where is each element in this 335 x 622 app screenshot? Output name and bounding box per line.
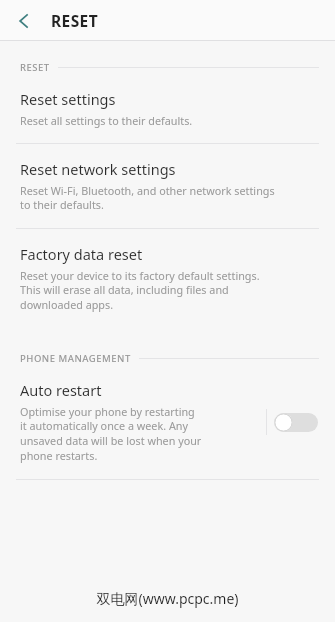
staticText: Reset settings (20, 89, 116, 109)
staticText: RESET (20, 61, 50, 74)
staticText: Reset network settings (20, 159, 176, 179)
staticText: PHONE MANAGEMENT (20, 352, 131, 365)
staticText: Reset all settings to their defaults. (20, 113, 193, 128)
button[interactable]: Reset network settings (0, 144, 335, 228)
button[interactable]: Reset settings (0, 74, 335, 143)
staticText: Optimise your phone by restarting it aut… (20, 404, 202, 464)
staticText: Auto restart (20, 380, 102, 400)
staticText: Reset Wi-Fi, Bluetooth, and other networ… (20, 183, 275, 213)
staticText: Factory data reset (20, 244, 143, 264)
staticText: 双电网(www.pcpc.me) (96, 589, 239, 608)
staticText: Reset your device to its factory default… (20, 268, 260, 313)
button[interactable]: Auto restart toggle (274, 412, 318, 432)
button[interactable]: Factory data reset (0, 229, 335, 328)
button[interactable]: Auto restart (0, 365, 335, 479)
button[interactable]: Back (8, 5, 40, 37)
staticText: RESET (51, 10, 99, 31)
